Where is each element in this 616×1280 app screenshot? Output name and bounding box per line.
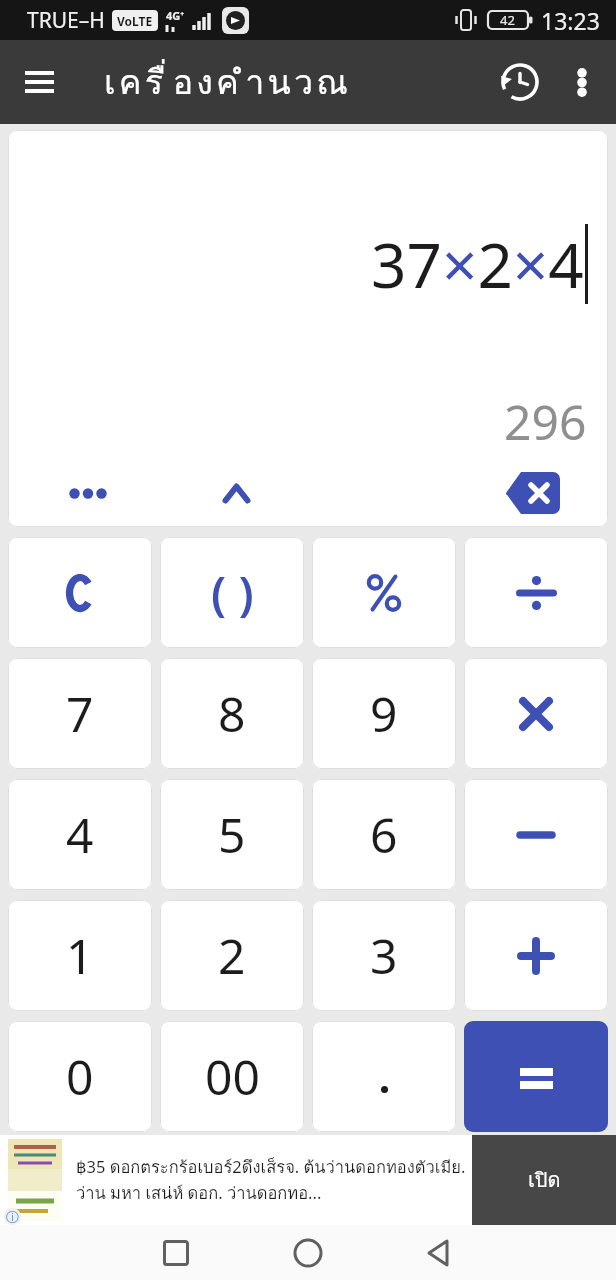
staticText: 6 bbox=[370, 802, 398, 867]
staticText: 0 bbox=[66, 1044, 94, 1109]
staticText: TRUE–H bbox=[27, 6, 105, 35]
staticText: 4 bbox=[66, 802, 94, 867]
button[interactable]: 7 bbox=[8, 658, 152, 769]
button[interactable]: 2 bbox=[160, 900, 304, 1011]
staticText: 3 bbox=[370, 923, 398, 988]
staticText: เครื่องคำนวณ bbox=[104, 55, 351, 109]
button[interactable] bbox=[13, 56, 65, 108]
staticText: 7 bbox=[66, 681, 94, 746]
staticText: 37×2×4 bbox=[371, 222, 584, 306]
button[interactable]: 3 bbox=[312, 900, 456, 1011]
staticText: 8 bbox=[218, 681, 246, 746]
button[interactable] bbox=[154, 1231, 198, 1275]
staticText: 5 bbox=[218, 802, 246, 867]
button[interactable] bbox=[286, 1231, 330, 1275]
staticText: ( ) bbox=[211, 561, 254, 625]
button[interactable]: ( ) bbox=[160, 537, 304, 648]
staticText: 1 bbox=[66, 923, 94, 988]
button[interactable]: 00 bbox=[160, 1021, 304, 1132]
staticText: ⓘ bbox=[6, 1209, 19, 1225]
button[interactable] bbox=[8, 537, 152, 648]
button[interactable] bbox=[416, 1231, 460, 1275]
staticText: ฿35 ดอกตระกร้อเบอร์2ดึงเส็รจ. ต้นว่านดอก… bbox=[76, 1154, 466, 1180]
button[interactable] bbox=[464, 537, 608, 648]
button[interactable]: 6 bbox=[312, 779, 456, 890]
button[interactable]: 0 bbox=[8, 1021, 152, 1132]
button[interactable]: 9 bbox=[312, 658, 456, 769]
button[interactable] bbox=[214, 473, 258, 513]
staticText: 00 bbox=[205, 1044, 260, 1109]
button[interactable]: 1 bbox=[8, 900, 152, 1011]
button[interactable]: 5 bbox=[160, 779, 304, 890]
staticText: 296 bbox=[504, 389, 587, 454]
button[interactable] bbox=[312, 537, 456, 648]
button[interactable] bbox=[312, 1021, 456, 1132]
button[interactable] bbox=[464, 1021, 608, 1132]
staticText: 13:23 bbox=[541, 5, 600, 36]
staticText: 2 bbox=[218, 923, 246, 988]
button[interactable]: เปิด bbox=[472, 1135, 616, 1225]
staticText: 4G⁺ bbox=[166, 8, 185, 23]
staticText: VoLTE bbox=[117, 13, 153, 29]
button[interactable]: 4 bbox=[8, 779, 152, 890]
button[interactable] bbox=[464, 658, 608, 769]
button[interactable] bbox=[66, 473, 110, 513]
staticText: เปิด bbox=[528, 1164, 561, 1196]
button[interactable] bbox=[560, 60, 604, 104]
button[interactable] bbox=[464, 779, 608, 890]
button[interactable] bbox=[505, 471, 561, 515]
button[interactable] bbox=[496, 58, 544, 106]
staticText: 9 bbox=[370, 681, 398, 746]
staticText: ว่าน มหา เสน่ห์ ดอก. ว่านดอกทอ... bbox=[76, 1180, 322, 1206]
staticText: 42 bbox=[500, 11, 515, 29]
button[interactable] bbox=[464, 900, 608, 1011]
button[interactable]: 8 bbox=[160, 658, 304, 769]
